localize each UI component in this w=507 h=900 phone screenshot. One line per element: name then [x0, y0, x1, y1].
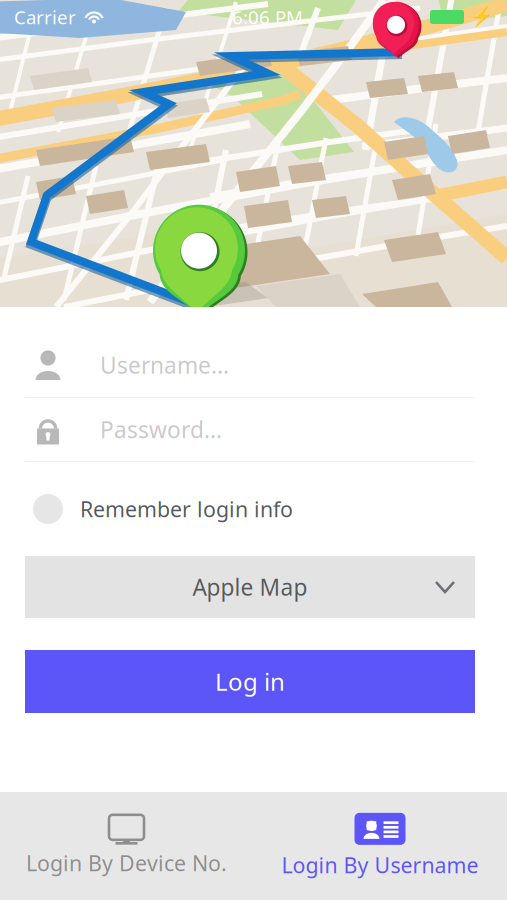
staticText: Username... — [100, 350, 229, 380]
staticText: Login By Username — [281, 851, 478, 879]
button[interactable]: Login By Username — [253, 792, 507, 900]
button[interactable]: Login By Device No. — [0, 792, 253, 900]
staticText: Log in — [215, 666, 285, 697]
staticText: Login By Device No. — [26, 849, 227, 877]
staticText: ⚡ — [470, 6, 493, 28]
button[interactable]: Apple Map — [25, 556, 475, 618]
staticText: Remember login info — [80, 495, 293, 523]
staticText: 6:06 PM — [232, 5, 303, 29]
button[interactable]: Remember login info — [25, 462, 475, 556]
button[interactable]: Log in — [25, 650, 475, 713]
staticText: Carrier — [14, 5, 76, 29]
staticText: Apple Map — [192, 572, 307, 602]
staticText: Password... — [100, 414, 222, 444]
